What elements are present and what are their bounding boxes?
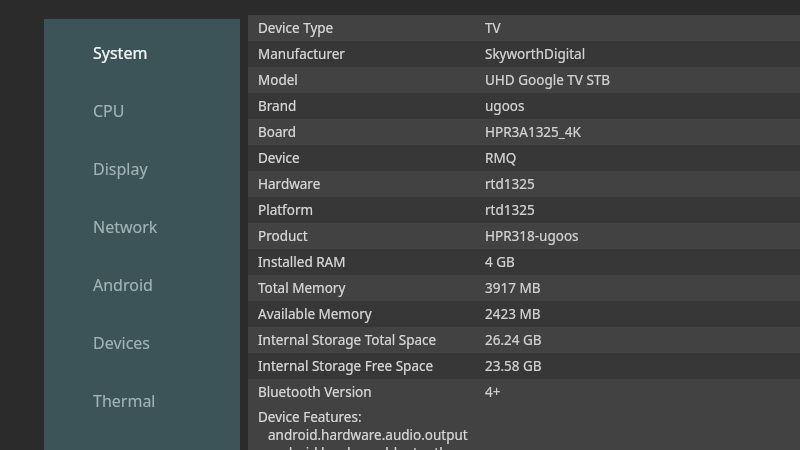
staticText: 23.58 GB xyxy=(485,357,542,375)
button[interactable]: Installed RAM xyxy=(248,249,800,275)
staticText: Total Memory xyxy=(258,279,346,297)
staticText: Internal Storage Free Space xyxy=(258,357,434,375)
staticText: 2423 MB xyxy=(485,305,541,323)
staticText: Platform xyxy=(258,201,314,219)
staticText: Model xyxy=(258,71,298,89)
staticText: Brand xyxy=(258,97,297,115)
staticText: Thermal xyxy=(93,390,156,412)
staticText: RMQ xyxy=(485,149,517,167)
staticText: System xyxy=(93,42,148,64)
staticText: Android xyxy=(93,274,153,296)
staticText: TV xyxy=(485,19,501,37)
button[interactable]: Internal Storage Total Space xyxy=(248,327,800,353)
staticText: Device Features: xyxy=(258,408,362,426)
staticText: Bluetooth Version xyxy=(258,383,372,401)
button[interactable]: Platform xyxy=(248,197,800,223)
staticText: 4 GB xyxy=(485,253,515,271)
staticText: android.hardware.bluetooth xyxy=(268,444,448,450)
staticText: Devices xyxy=(93,332,151,354)
staticText: rtd1325 xyxy=(485,175,535,193)
button[interactable]: Hardware xyxy=(248,171,800,197)
button[interactable]: Manufacturer xyxy=(248,41,800,67)
staticText: Manufacturer xyxy=(258,45,345,63)
button[interactable]: Thermal xyxy=(44,386,240,416)
button[interactable]: CPU xyxy=(44,96,240,126)
staticText: UHD Google TV STB xyxy=(485,71,611,89)
staticText: Product xyxy=(258,227,308,245)
staticText: rtd1325 xyxy=(485,201,535,219)
button[interactable]: Product xyxy=(248,223,800,249)
staticText: Board xyxy=(258,123,297,141)
button[interactable]: Device xyxy=(248,145,800,171)
staticText: Network xyxy=(93,216,158,238)
button[interactable]: Available Memory xyxy=(248,301,800,327)
staticText: Hardware xyxy=(258,175,321,193)
button[interactable]: Bluetooth Version xyxy=(248,379,800,405)
staticText: CPU xyxy=(93,100,125,122)
staticText: Device xyxy=(258,149,300,167)
button[interactable]: Device Type xyxy=(248,15,800,41)
staticText: Device Type xyxy=(258,19,334,37)
button[interactable]: Internal Storage Free Space xyxy=(248,353,800,379)
button[interactable]: Android xyxy=(44,270,240,300)
button[interactable]: Total Memory xyxy=(248,275,800,301)
staticText: 26.24 GB xyxy=(485,331,542,349)
staticText: 4+ xyxy=(485,383,501,401)
button[interactable]: Model xyxy=(248,67,800,93)
staticText: Installed RAM xyxy=(258,253,346,271)
staticText: Display xyxy=(93,158,148,180)
staticText: 3917 MB xyxy=(485,279,541,297)
button[interactable]: Display xyxy=(44,154,240,184)
button[interactable]: Devices xyxy=(44,328,240,358)
staticText: ugoos xyxy=(485,97,525,115)
staticText: android.hardware.audio.output xyxy=(268,426,468,444)
staticText: HPR3A1325_4K xyxy=(485,123,581,141)
button[interactable]: Network xyxy=(44,212,240,242)
button[interactable]: Brand xyxy=(248,93,800,119)
button[interactable]: Device Features: xyxy=(248,405,800,450)
button[interactable]: System xyxy=(44,38,240,68)
staticText: SkyworthDigital xyxy=(485,45,586,63)
staticText: Available Memory xyxy=(258,305,372,323)
button[interactable]: Board xyxy=(248,119,800,145)
staticText: Internal Storage Total Space xyxy=(258,331,437,349)
staticText: HPR318-ugoos xyxy=(485,227,579,245)
